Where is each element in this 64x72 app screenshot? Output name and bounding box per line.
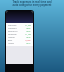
staticText: Rent <box>8 39 13 42</box>
staticText: Shopping <box>8 33 17 36</box>
staticText: +640 <box>26 36 31 39</box>
staticText: Dining out <box>8 30 18 33</box>
staticText: -2,300 <box>25 39 31 42</box>
staticText: Utilities <box>8 36 15 39</box>
staticText: Groceries <box>8 24 17 27</box>
staticText: Health <box>8 42 14 45</box>
button[interactable]: Utilities <box>8 36 31 39</box>
button[interactable]: Health <box>8 42 31 45</box>
staticText: +1,240 <box>25 24 31 27</box>
staticText: auto categorise every payment <box>0 3 64 6</box>
button[interactable]: Shopping <box>8 33 31 36</box>
button[interactable]: Rent <box>8 39 31 42</box>
button[interactable]: Dining out <box>8 30 31 33</box>
staticText: Transport <box>8 27 17 30</box>
staticText: +310 <box>26 42 31 45</box>
staticText: +1,100 <box>25 33 31 36</box>
staticText: +860 <box>26 27 31 30</box>
staticText: +520 <box>26 30 31 33</box>
button[interactable]: Transport <box>8 27 31 30</box>
staticText: Track expenses in real time and <box>0 0 64 3</box>
button[interactable]: Groceries <box>8 24 31 27</box>
